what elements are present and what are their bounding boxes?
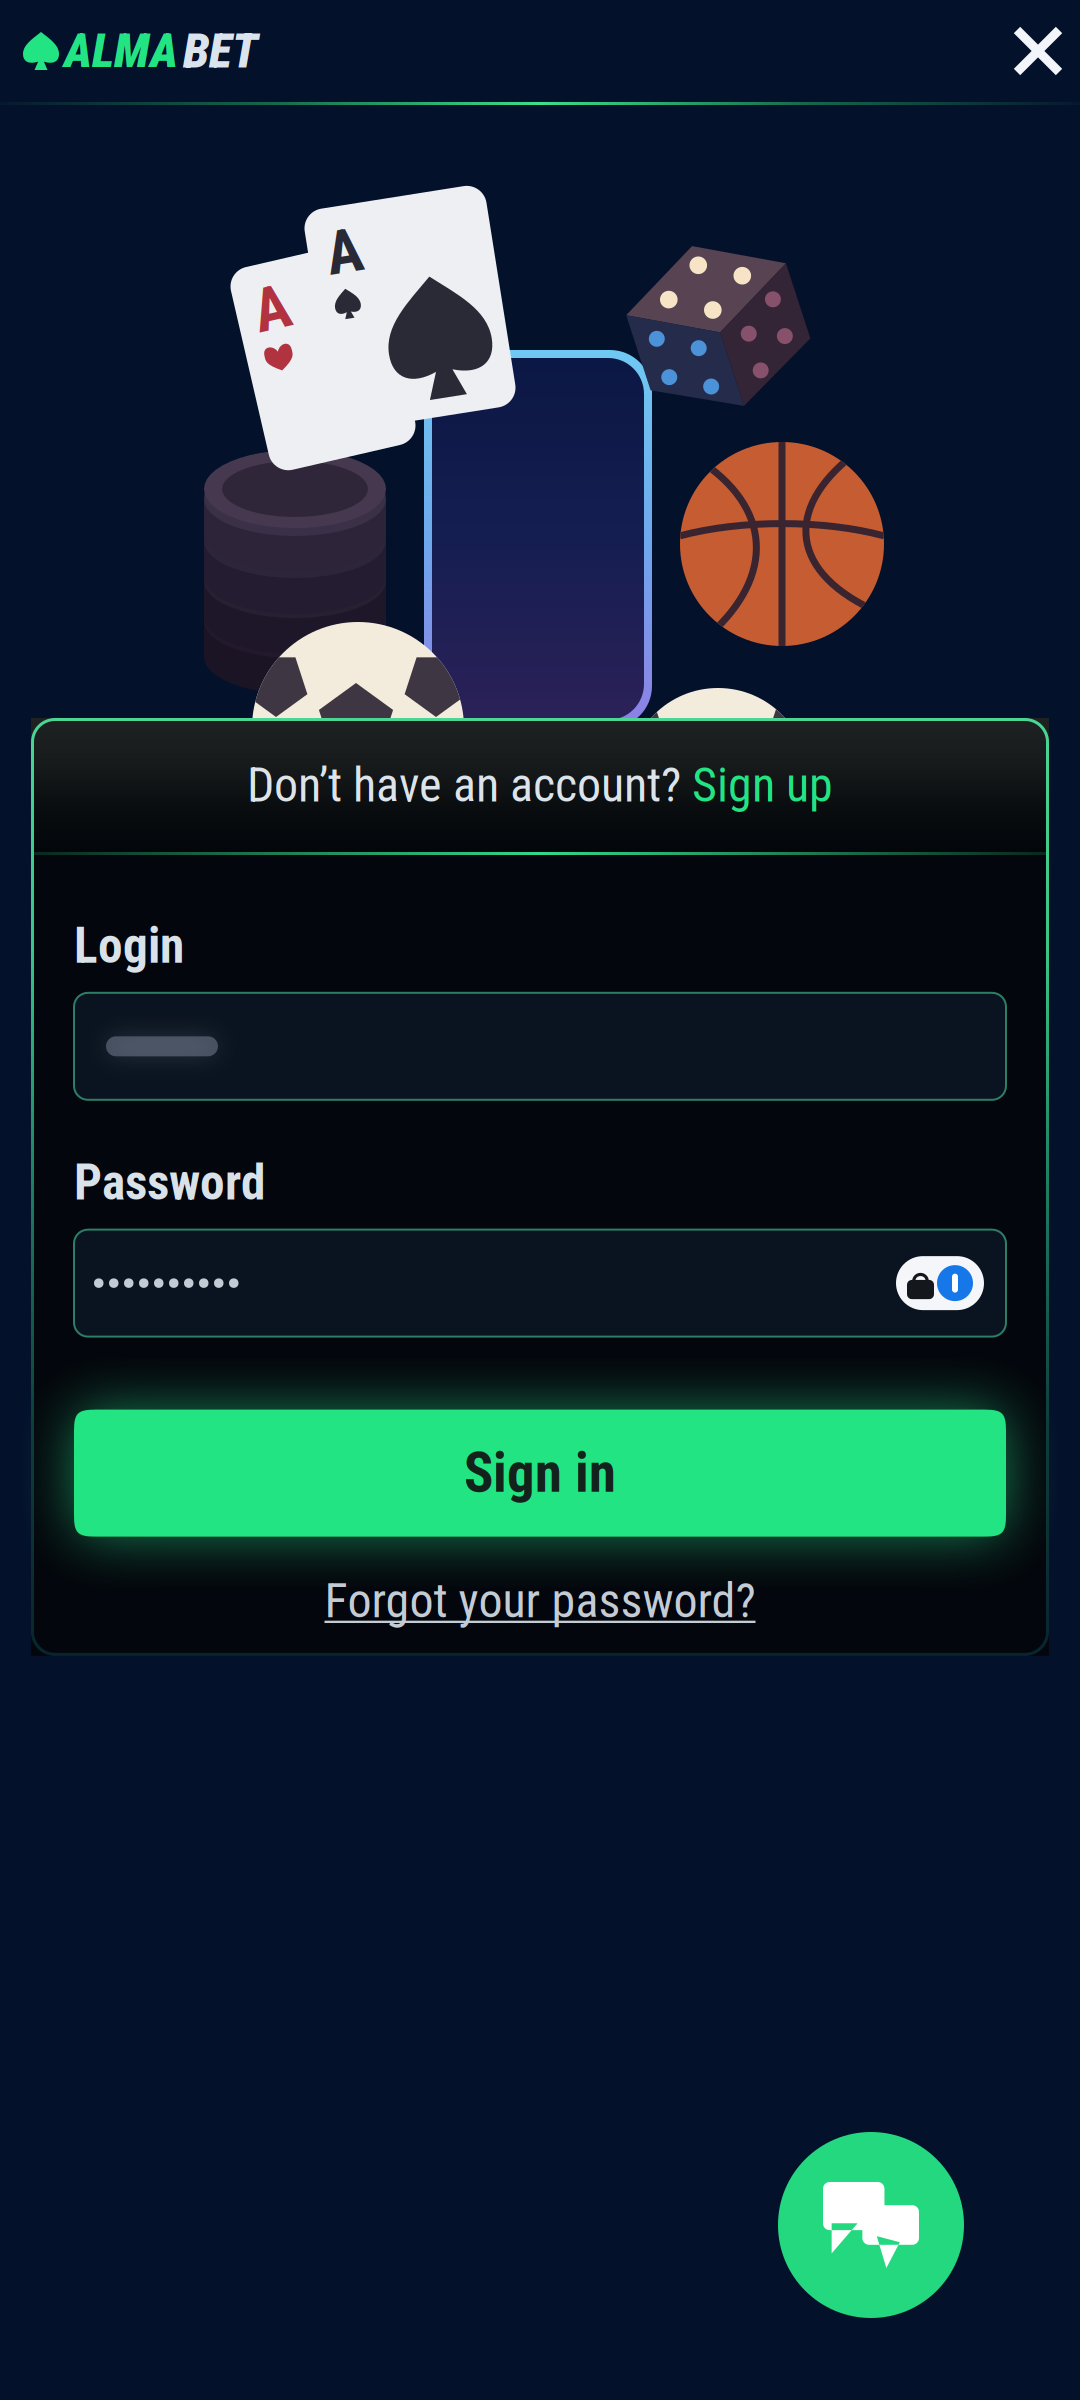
staticText: Sign up <box>692 757 833 813</box>
button[interactable]: Sign in <box>74 1410 1006 1537</box>
staticText: ALMA <box>64 23 178 79</box>
staticText: Forgot your password? <box>324 1573 755 1629</box>
staticText: Password <box>74 1154 265 1212</box>
staticText: Don’t have an account? <box>247 757 692 813</box>
button[interactable]: Sign up <box>692 757 833 813</box>
staticText: Sign in <box>464 1441 616 1505</box>
button[interactable]: Close <box>996 9 1080 93</box>
staticText: BET <box>183 23 258 79</box>
staticText: A <box>336 206 373 278</box>
button[interactable]: Live chat <box>778 2132 964 2318</box>
staticText: A <box>266 262 303 334</box>
staticText: Login <box>74 917 184 975</box>
button[interactable]: Forgot your password? <box>74 1573 1006 1629</box>
